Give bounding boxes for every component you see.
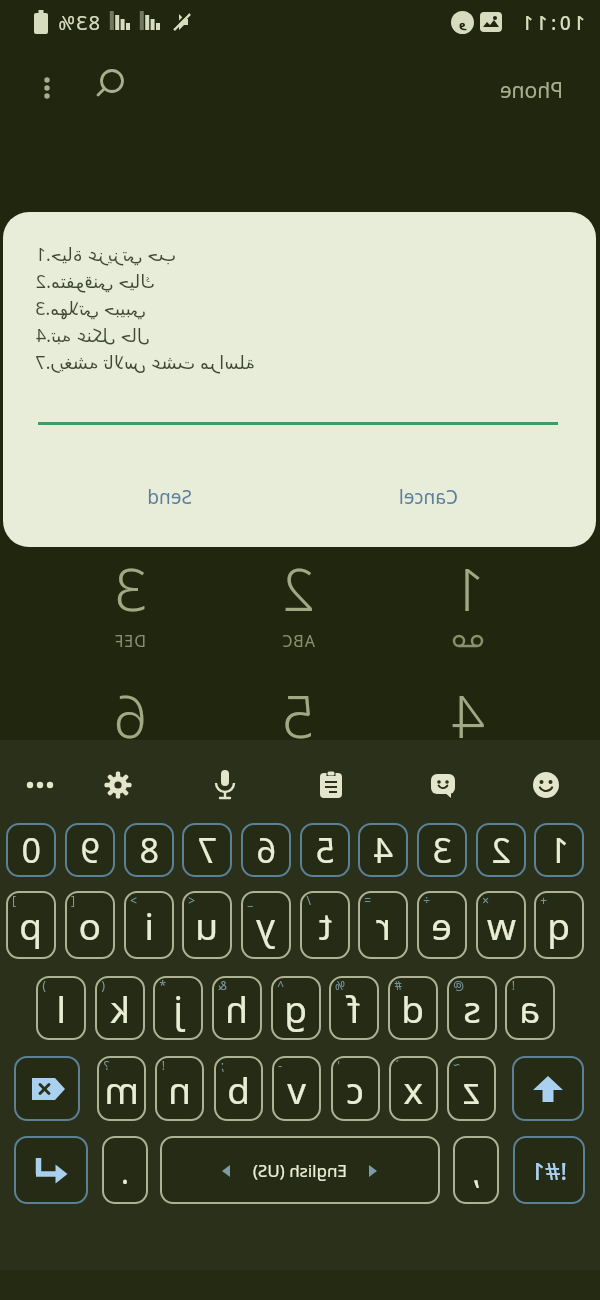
button[interactable]: l	[36, 976, 86, 1040]
staticText: >	[130, 892, 137, 908]
button[interactable]: f	[329, 976, 379, 1040]
button[interactable]	[419, 761, 467, 809]
staticText: ?	[103, 1057, 109, 1073]
button[interactable]	[522, 761, 570, 809]
button[interactable]: n	[155, 1056, 204, 1121]
button[interactable]: b	[214, 1056, 263, 1121]
staticText: ,	[471, 1152, 480, 1193]
button[interactable]: 9	[65, 823, 115, 877]
staticText: i	[144, 900, 154, 950]
staticText: n	[168, 1064, 191, 1114]
button[interactable]: j	[153, 976, 203, 1040]
staticText: <	[188, 892, 195, 908]
staticText: x	[403, 1064, 423, 1114]
staticText: '	[337, 1057, 340, 1073]
button[interactable]	[25, 66, 69, 110]
staticText: [	[71, 892, 75, 908]
button[interactable]	[512, 1056, 584, 1121]
button[interactable]: 1	[534, 823, 584, 877]
button[interactable]: c	[331, 1056, 380, 1121]
button[interactable]: r	[358, 891, 408, 959]
button[interactable]: d	[388, 976, 438, 1040]
staticText: 5	[315, 827, 335, 873]
button[interactable]: o	[65, 891, 115, 959]
button[interactable]: m	[97, 1056, 146, 1121]
button[interactable]: x	[389, 1056, 438, 1121]
staticText: a	[519, 983, 540, 1033]
staticText: ‏3.مهلاتي حبيبي	[35, 296, 146, 321]
button[interactable]	[16, 761, 64, 809]
button[interactable]	[307, 761, 355, 809]
staticText: g	[284, 983, 307, 1033]
staticText: 1	[549, 827, 569, 873]
button[interactable]: 2	[476, 823, 526, 877]
staticText: 4	[373, 827, 393, 873]
button[interactable]: a	[505, 976, 555, 1040]
staticText: ×	[482, 892, 489, 908]
staticText: 6	[256, 827, 276, 873]
staticText: z	[462, 1064, 480, 1114]
button[interactable]: 6	[241, 823, 291, 877]
button[interactable]: h	[212, 976, 262, 1040]
staticText: ‏4.تبه عنكل حال	[35, 323, 150, 348]
button[interactable]: u	[182, 891, 232, 959]
button[interactable]: s	[447, 976, 497, 1040]
button[interactable]: 5	[300, 823, 350, 877]
staticText: .	[120, 1152, 129, 1193]
button[interactable]	[94, 761, 142, 809]
button[interactable]: t	[300, 891, 350, 959]
staticText: ~	[453, 1057, 460, 1073]
button[interactable]: 0	[6, 823, 56, 877]
staticText: y	[256, 900, 275, 950]
button[interactable]: w	[476, 891, 526, 959]
staticText: 83%	[57, 9, 100, 36]
button[interactable]: k	[95, 976, 145, 1040]
button[interactable]: 3	[417, 823, 467, 877]
staticText: &	[218, 977, 227, 993]
button[interactable]: !#1	[513, 1136, 585, 1204]
button[interactable]: 7	[182, 823, 232, 877]
button[interactable]: 4	[358, 823, 408, 877]
button[interactable]: p	[6, 891, 56, 959]
staticText: o	[78, 900, 101, 950]
staticText: r	[375, 900, 391, 950]
button[interactable]: English (US)	[160, 1136, 440, 1204]
button[interactable]: e	[417, 891, 467, 959]
button[interactable]: Cancel	[378, 477, 478, 517]
button[interactable]: y	[241, 891, 291, 959]
staticText: ]	[12, 892, 16, 908]
staticText: k	[110, 983, 130, 1033]
staticText: b	[227, 1064, 250, 1114]
staticText: 9	[80, 827, 100, 873]
button[interactable]	[14, 1056, 80, 1121]
staticText: 2	[281, 549, 315, 628]
button[interactable]	[14, 1136, 88, 1204]
staticText: ‏7.ريغشه تالاس عشت مراسلة	[35, 350, 255, 375]
staticText: 5	[281, 676, 315, 755]
staticText: %	[335, 977, 345, 993]
staticText: w	[486, 900, 516, 950]
button[interactable]	[201, 761, 249, 809]
button[interactable]: g	[271, 976, 321, 1040]
button[interactable]: ,	[453, 1136, 499, 1204]
staticText: t	[318, 900, 332, 950]
staticText: ‏2.متفوقني حياك	[35, 269, 155, 294]
button[interactable]: i	[124, 891, 174, 959]
staticText: @	[453, 977, 464, 993]
staticText: _	[247, 892, 253, 908]
button[interactable]: z	[447, 1056, 496, 1121]
button[interactable]: .	[102, 1136, 148, 1204]
staticText: f	[347, 983, 360, 1033]
button[interactable]: Send	[120, 477, 220, 517]
staticText: ;	[220, 1057, 224, 1073]
button[interactable]: q	[534, 891, 584, 959]
staticText: =	[364, 892, 371, 908]
staticText: 4	[451, 676, 485, 755]
button[interactable]	[88, 61, 132, 105]
staticText: +	[540, 892, 547, 908]
staticText: 10:11	[518, 10, 585, 36]
staticText: h	[225, 983, 248, 1033]
button[interactable]: v	[272, 1056, 321, 1121]
staticText: v	[287, 1064, 306, 1114]
button[interactable]: 8	[124, 823, 174, 877]
